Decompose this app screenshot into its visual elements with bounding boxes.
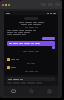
button[interactable]: Sent message — [42, 37, 55, 40]
button[interactable]: Message input — [7, 77, 55, 81]
button[interactable]: Search — [22, 86, 40, 96]
button[interactable]: Chats — [4, 86, 22, 96]
button[interactable]: Assistant message — [7, 41, 55, 46]
button[interactable]: Settings — [40, 86, 58, 96]
button[interactable]: Tool call — [7, 66, 55, 69]
button[interactable]: Tool call — [7, 58, 55, 61]
